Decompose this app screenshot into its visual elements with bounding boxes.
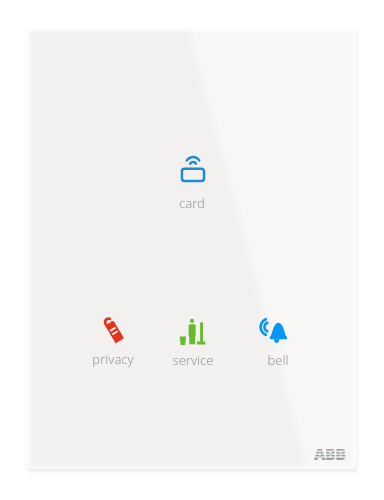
staticText: privacy [77,350,149,368]
staticText: card [156,194,228,212]
button[interactable]: card [157,150,229,212]
staticText: bell [242,351,314,369]
button[interactable]: privacy [77,310,149,368]
staticText: ABB [314,443,346,463]
staticText: service [157,351,229,369]
button[interactable]: service [156,311,228,369]
other: ABB logo [314,443,354,463]
button[interactable]: bell [238,310,310,369]
